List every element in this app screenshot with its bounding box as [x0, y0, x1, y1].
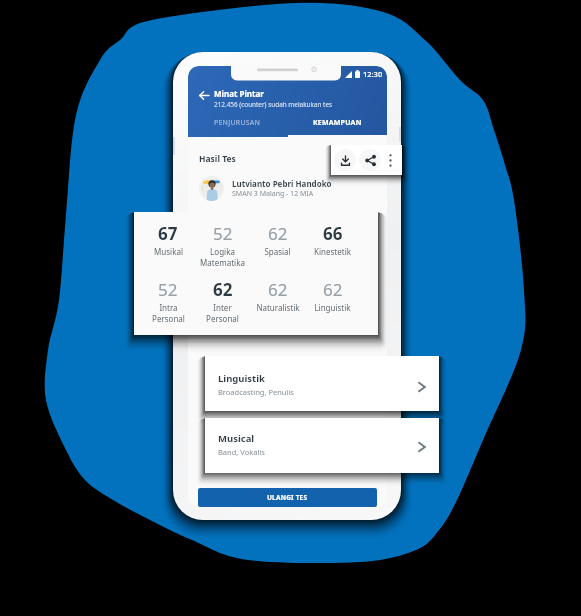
staticText: Broadcasting, Penulis: [218, 387, 294, 397]
staticText: Kinestetik: [314, 246, 351, 257]
staticText: Naturalistik: [256, 302, 300, 313]
button[interactable]: More options: [382, 152, 398, 168]
staticText: Spasial: [264, 246, 291, 257]
staticText: Minat Pintar: [214, 88, 264, 99]
staticText: 12:30: [363, 69, 383, 79]
button[interactable]: Linguistik: [205, 356, 439, 411]
staticText: 66: [323, 222, 343, 245]
button[interactable]: Download: [334, 149, 356, 171]
button[interactable]: 62: [195, 278, 250, 324]
staticText: 67: [158, 222, 178, 245]
button[interactable]: 62: [250, 278, 305, 313]
button[interactable]: 67: [141, 222, 195, 257]
staticText: 62: [268, 278, 288, 301]
button[interactable]: Musical: [205, 418, 439, 473]
staticText: KEMAMPUAN: [313, 118, 362, 128]
button[interactable]: Share: [359, 149, 381, 171]
staticText: Musical: [218, 432, 255, 445]
button[interactable]: 66: [305, 222, 360, 257]
staticText: Band, Vokalis: [218, 447, 265, 457]
staticText: Linguistik: [314, 302, 351, 313]
staticText: 52: [213, 222, 233, 245]
staticText: Linguistik: [218, 372, 265, 385]
staticText: SMAN 3 Malang - 12 MIA: [232, 189, 314, 199]
staticText: Logika Matematika: [200, 246, 245, 268]
button[interactable]: Back: [196, 87, 212, 103]
button[interactable]: 62: [250, 222, 305, 257]
staticText: Hasil Tes: [199, 153, 236, 165]
button[interactable]: ULANGI TES: [198, 488, 377, 507]
button[interactable]: PENJURUSAN: [188, 115, 287, 130]
staticText: Lutvianto Pebri Handoko: [232, 178, 332, 189]
staticText: Musikal: [154, 246, 183, 257]
staticText: 52: [158, 278, 178, 301]
staticText: Inter Personal: [206, 302, 239, 324]
staticText: PENJURUSAN: [214, 118, 261, 128]
staticText: 62: [323, 278, 343, 301]
button[interactable]: KEMAMPUAN: [287, 115, 387, 130]
staticText: 62: [268, 222, 288, 245]
staticText: Intra Personal: [152, 302, 185, 324]
button[interactable]: 52: [195, 222, 250, 268]
staticText: 212.456 (counter) sudah melakukan tes: [214, 100, 333, 109]
staticText: 62: [213, 278, 233, 301]
staticText: ULANGI TES: [267, 493, 308, 502]
button[interactable]: 52: [141, 278, 195, 324]
button[interactable]: 62: [305, 278, 360, 313]
